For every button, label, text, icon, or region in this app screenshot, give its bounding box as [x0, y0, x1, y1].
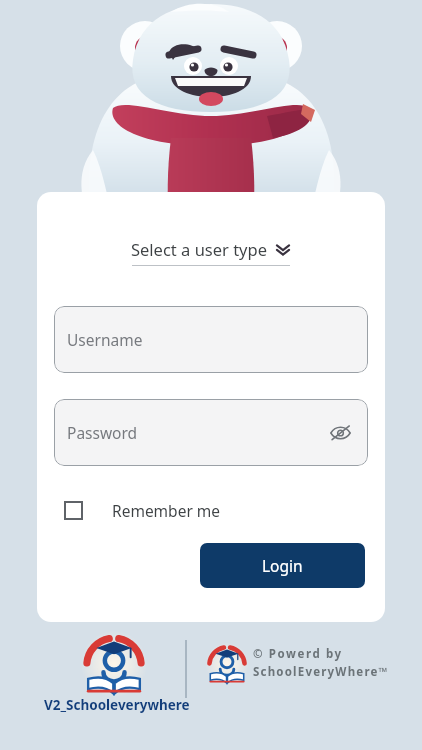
- button[interactable]: Login: [200, 543, 365, 588]
- button[interactable]: Show password: [325, 418, 355, 448]
- staticText: V2_Schooleverywhere: [44, 696, 190, 714]
- button[interactable]: Username: [54, 306, 368, 373]
- staticText: Login: [262, 555, 303, 576]
- staticText: Select a user type: [131, 238, 267, 260]
- staticText: SchoolEveryWhere™: [253, 664, 389, 680]
- button[interactable]: Password: [54, 399, 368, 466]
- button[interactable]: Remember me: [54, 494, 231, 527]
- staticText: Username: [67, 329, 143, 350]
- button[interactable]: Select a user type: [127, 236, 295, 268]
- staticText: Remember me: [112, 500, 221, 521]
- staticText: Password: [67, 422, 138, 443]
- staticText: © Powerd by: [253, 646, 343, 662]
